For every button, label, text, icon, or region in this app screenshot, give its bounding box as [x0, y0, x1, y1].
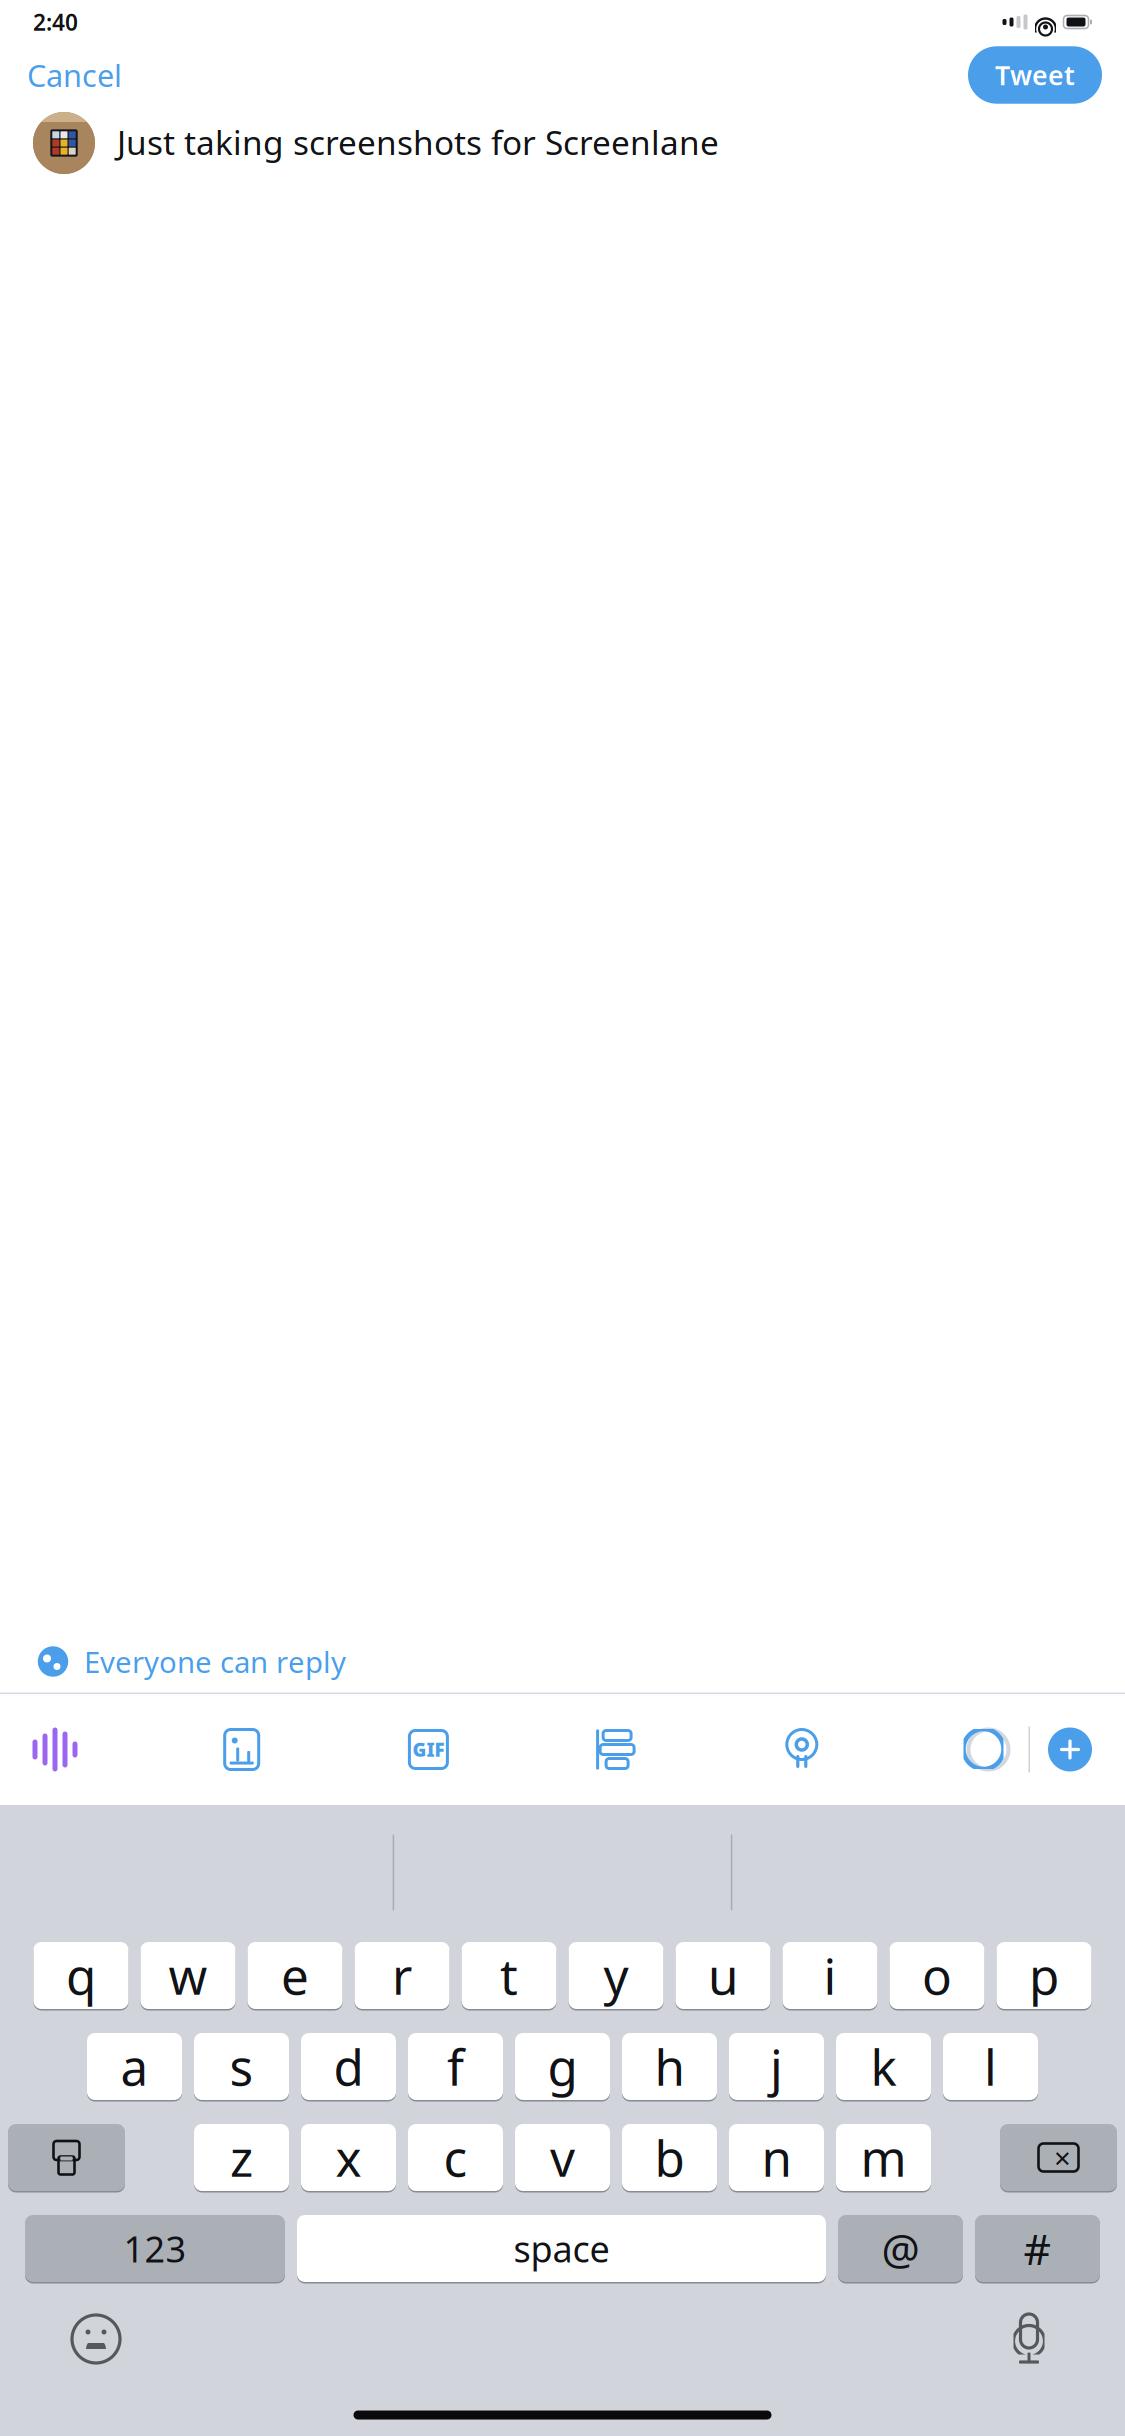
staticText: Cancel: [27, 55, 122, 95]
staticText: a: [120, 2034, 148, 2099]
staticText: Just taking screenshots for Screenlane: [117, 120, 719, 164]
staticText: 123: [123, 2225, 186, 2272]
button[interactable]: space: [297, 2213, 826, 2284]
button[interactable]: Delete: [1000, 2122, 1117, 2193]
button[interactable]: x: [301, 2122, 396, 2193]
button[interactable]: s: [194, 2031, 289, 2102]
staticText: Tweet: [995, 57, 1075, 93]
button[interactable]: Add voice recording: [32, 1726, 78, 1772]
staticText: 2:40: [33, 7, 78, 37]
staticText: u: [708, 1943, 738, 2008]
staticText: r: [392, 1943, 412, 2008]
staticText: GIF: [412, 1737, 444, 1762]
button[interactable]: w: [140, 1940, 235, 2011]
staticText: space: [513, 2225, 609, 2272]
staticText: i: [823, 1943, 836, 2008]
staticText: n: [761, 2125, 791, 2190]
staticText: #: [1023, 2220, 1051, 2277]
staticText: l: [984, 2034, 997, 2099]
button[interactable]: h: [622, 2031, 717, 2102]
button[interactable]: Add location: [779, 1726, 825, 1772]
staticText: Everyone can reply: [84, 1642, 346, 1681]
button[interactable]: m: [836, 2122, 931, 2193]
button[interactable]: q: [33, 1940, 128, 2011]
staticText: e: [281, 1943, 309, 2008]
staticText: x: [335, 2125, 361, 2190]
button[interactable]: j: [729, 2031, 824, 2102]
staticText: m: [860, 2125, 906, 2190]
button[interactable]: t: [461, 1940, 556, 2011]
staticText: t: [500, 1943, 518, 2008]
staticText: y: [603, 1943, 628, 2008]
button[interactable]: Add GIF: [405, 1726, 451, 1772]
button[interactable]: #: [975, 2213, 1100, 2284]
button[interactable]: Cancel: [23, 47, 126, 103]
staticText: s: [229, 2034, 253, 2099]
button[interactable]: Everyone can reply: [0, 1630, 1125, 1692]
button[interactable]: c: [408, 2122, 503, 2193]
button[interactable]: p: [996, 1940, 1091, 2011]
button[interactable]: Tweet: [968, 46, 1102, 104]
button[interactable]: v: [515, 2122, 610, 2193]
staticText: c: [443, 2125, 467, 2190]
button[interactable]: n: [729, 2122, 824, 2193]
staticText: h: [654, 2034, 684, 2099]
button[interactable]: y: [568, 1940, 663, 2011]
staticText: @: [881, 2220, 919, 2277]
staticText: j: [770, 2034, 783, 2099]
button[interactable]: Add another Tweet: [1047, 1726, 1093, 1772]
button[interactable]: u: [675, 1940, 770, 2011]
staticText: f: [447, 2034, 464, 2099]
staticText: w: [168, 1943, 207, 2008]
staticText: ×: [1054, 2138, 1071, 2177]
button[interactable]: a: [87, 2031, 182, 2102]
staticText: k: [870, 2034, 896, 2099]
button[interactable]: i: [782, 1940, 877, 2011]
staticText: v: [550, 2125, 575, 2190]
button[interactable]: o: [889, 1940, 984, 2011]
staticText: g: [547, 2034, 577, 2099]
button[interactable]: b: [622, 2122, 717, 2193]
button[interactable]: Emoji: [68, 2311, 124, 2367]
button[interactable]: @: [838, 2213, 963, 2284]
staticText: p: [1029, 1943, 1059, 2008]
button[interactable]: Add poll: [592, 1726, 638, 1772]
button[interactable]: g: [515, 2031, 610, 2102]
button[interactable]: d: [301, 2031, 396, 2102]
staticText: b: [654, 2125, 684, 2190]
staticText: q: [66, 1943, 96, 2008]
button[interactable]: Dictate: [1001, 2311, 1057, 2367]
button[interactable]: r: [354, 1940, 449, 2011]
button[interactable]: k: [836, 2031, 931, 2102]
staticText: z: [230, 2125, 253, 2190]
staticText: d: [333, 2034, 363, 2099]
button[interactable]: e: [247, 1940, 342, 2011]
button[interactable]: l: [943, 2031, 1038, 2102]
button[interactable]: Add photo: [219, 1726, 265, 1772]
button[interactable]: f: [408, 2031, 503, 2102]
button[interactable]: 123: [25, 2213, 285, 2284]
staticText: o: [922, 1943, 952, 2008]
button[interactable]: Shift: [8, 2122, 125, 2193]
button[interactable]: z: [194, 2122, 289, 2193]
